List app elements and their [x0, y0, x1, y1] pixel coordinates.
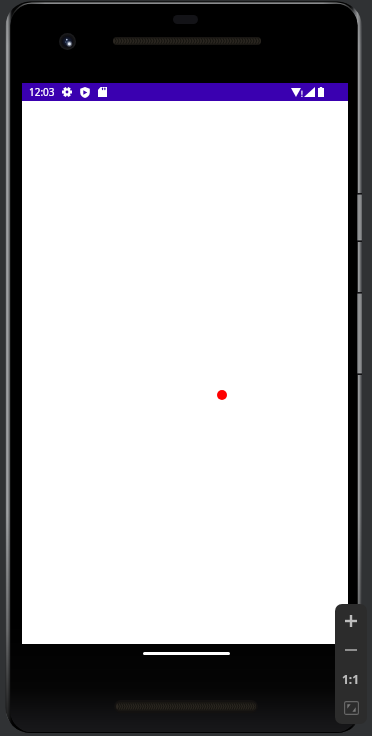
- button[interactable]: Zoom in: [335, 604, 367, 637]
- button[interactable]: Zoom out: [335, 637, 367, 662]
- button[interactable]: Fit to screen: [335, 695, 367, 721]
- staticText: 12:03: [29, 85, 55, 99]
- button[interactable]: 1:1: [335, 662, 367, 695]
- staticText: 1:1: [342, 671, 360, 687]
